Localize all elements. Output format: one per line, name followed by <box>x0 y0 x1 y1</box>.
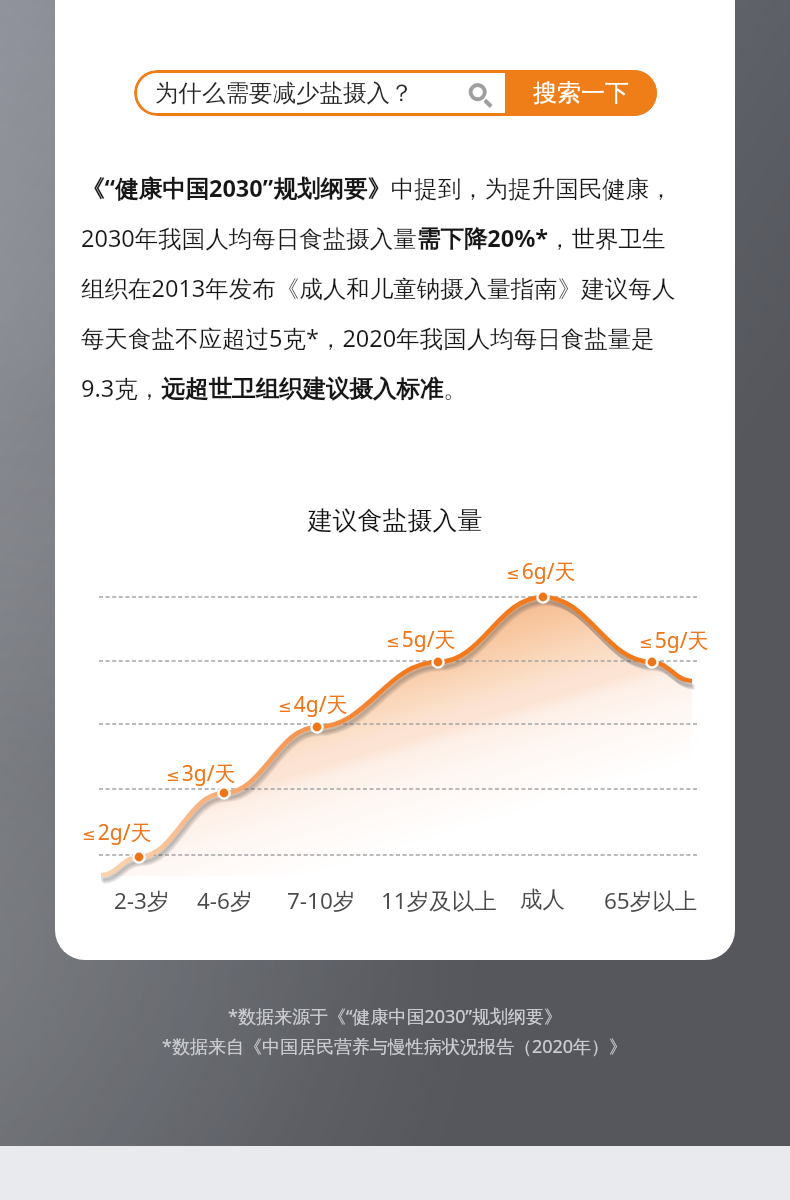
staticText: *数据来源于《“健康中国2030”规划纲要》 <box>228 1004 563 1029</box>
staticText: ≤ 5g/天 <box>639 626 709 655</box>
button[interactable]: 搜索一下 <box>505 70 657 116</box>
staticText: 7-10岁 <box>287 885 356 916</box>
staticText: ≤ 6g/天 <box>506 557 576 586</box>
button[interactable]: 为什么需要减少盐摄入？ <box>134 70 657 116</box>
staticText: ≤ 5g/天 <box>386 625 456 654</box>
staticText: 成人 <box>520 885 565 913</box>
staticText: 为什么需要减少盐摄入？ <box>155 78 414 108</box>
staticText: ≤ 2g/天 <box>82 818 152 847</box>
staticText: 65岁以上 <box>604 885 698 916</box>
other: Search <box>464 78 494 108</box>
staticText: 《“健康中国2030”规划纲要》中提到，为提升国民健康， 2030年我国人均每日… <box>81 172 676 404</box>
staticText: ≤ 3g/天 <box>166 759 236 788</box>
staticText: 11岁及以上 <box>381 885 497 916</box>
staticText: ≤ 4g/天 <box>278 690 348 719</box>
staticText: 4-6岁 <box>197 885 253 916</box>
staticText: 2-3岁 <box>114 885 170 916</box>
staticText: 搜索一下 <box>533 78 629 108</box>
staticText: 建议食盐摄入量 <box>55 505 735 536</box>
staticText: *数据来自《中国居民营养与慢性病状况报告（2020年）》 <box>162 1034 628 1059</box>
